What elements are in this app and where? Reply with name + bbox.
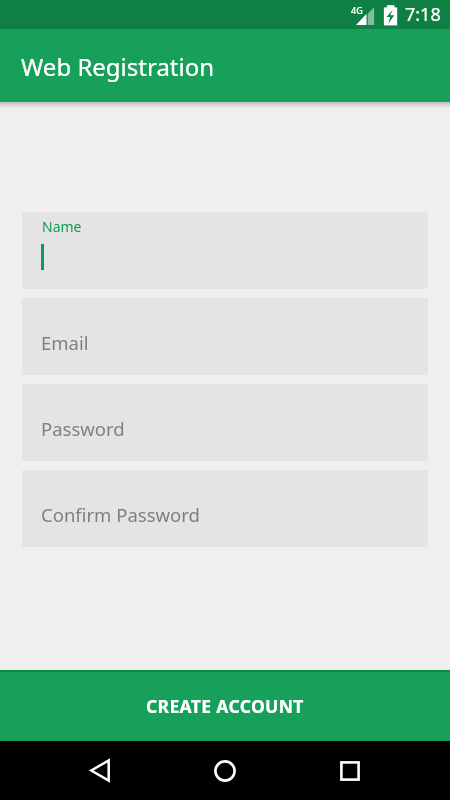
button[interactable]: CREATE ACCOUNT	[0, 670, 450, 741]
button[interactable]: Password	[22, 384, 428, 461]
button[interactable]: Back	[68, 741, 132, 800]
staticText: 7:18	[405, 2, 441, 27]
staticText: Web Registration	[21, 50, 215, 83]
staticText: Password	[41, 416, 125, 441]
staticText: 4G	[351, 4, 363, 16]
button[interactable]: Name	[22, 212, 428, 289]
button[interactable]: Recent apps	[318, 741, 382, 800]
button[interactable]: Email	[22, 298, 428, 375]
staticText: Confirm Password	[41, 502, 200, 527]
staticText: CREATE ACCOUNT	[146, 694, 304, 718]
button[interactable]: Home	[193, 741, 257, 800]
staticText: Name	[42, 217, 82, 236]
button[interactable]: Confirm Password	[22, 470, 428, 547]
staticText: Email	[41, 330, 89, 355]
